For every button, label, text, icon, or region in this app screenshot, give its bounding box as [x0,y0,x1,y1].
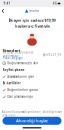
staticText: Keyfini çıkarın [2,68,24,72]
staticText: Standart [2,48,20,53]
staticText: Beğenilenleri görün [7,88,38,92]
staticText: aylık ₺229,99 [42,53,61,56]
staticText: marka [29,9,39,13]
button[interactable]: Geri [0,7,6,14]
staticText: İlk ayın için sadece ₺19,99 [8,17,55,23]
staticText: Aramalarda öne çıkın [7,75,34,78]
button[interactable]: Planı değiştir [2,56,22,60]
staticText: Özel planlara erişin [7,95,33,99]
button[interactable]: Aboneliği başlat [2,117,61,125]
staticText: Aboneliği başlat [16,118,48,123]
staticText: 9:41 [3,2,10,5]
staticText: Doğrulanma rozeti alın [7,61,38,65]
staticText: Ek özellikler [2,82,20,85]
staticText: Abonelik otomatik yenilenir, dilediğiniz… [1,110,62,117]
staticText: Planı değiştir [2,56,22,60]
staticText: 4G [53,2,57,5]
staticText: Bu plan ilk ay boyunca indirimlidir [2,51,32,58]
staticText: başlangıç fiyatıyla [14,23,49,28]
